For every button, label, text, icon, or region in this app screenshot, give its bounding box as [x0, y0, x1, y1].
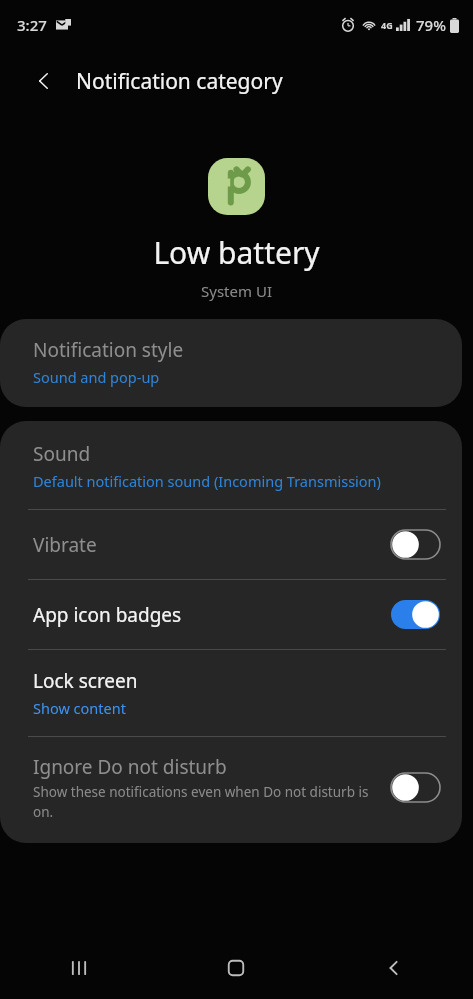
button[interactable]: Recent apps	[0, 937, 157, 999]
button[interactable]: Back	[315, 937, 473, 999]
staticText: Show these notifications even when Do no…	[33, 783, 377, 821]
staticText: 79%	[416, 15, 446, 35]
button[interactable]: Back	[22, 59, 66, 103]
button[interactable]: App icon badges	[0, 580, 462, 649]
staticText: Lock screen	[33, 668, 138, 694]
button[interactable]: Ignore Do not disturb	[0, 737, 462, 843]
staticText: 4G	[381, 19, 393, 31]
staticText: Default notification sound (Incoming Tra…	[33, 471, 381, 491]
staticText: Sound and pop-up	[33, 367, 160, 387]
button[interactable]: Vibrate	[0, 510, 462, 579]
button[interactable]: Sound	[0, 421, 462, 509]
button[interactable]: Lock screen	[0, 650, 462, 736]
button[interactable]: Home	[157, 937, 315, 999]
staticText: Show content	[33, 698, 126, 718]
staticText: Notification category	[76, 67, 283, 96]
staticText: Vibrate	[33, 532, 391, 558]
staticText: Ignore Do not disturb	[33, 754, 227, 780]
staticText: Sound	[33, 441, 91, 467]
button[interactable]: Notification style	[0, 319, 462, 407]
staticText: 3:27	[17, 15, 47, 35]
staticText: System UI	[201, 281, 272, 301]
staticText: Low battery	[153, 232, 320, 273]
staticText: App icon badges	[33, 602, 391, 628]
staticText: Notification style	[33, 337, 184, 363]
